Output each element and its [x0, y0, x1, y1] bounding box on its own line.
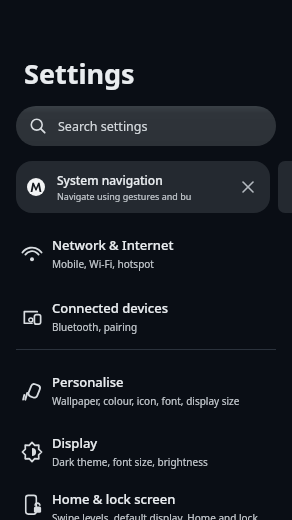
- staticText: Search settings: [58, 118, 148, 135]
- staticText: Connected devices: [52, 299, 169, 317]
- button[interactable]: Personalise: [0, 360, 292, 421]
- staticText: Wallpaper, colour, icon, font, display s…: [52, 394, 240, 408]
- button[interactable]: Display: [0, 421, 292, 482]
- staticText: Bluetooth, pairing: [52, 320, 138, 334]
- staticText: System navigation: [57, 172, 163, 188]
- staticText: Navigate using gestures and bu: [57, 190, 192, 202]
- staticText: Display: [52, 434, 98, 452]
- button[interactable]: Home & lock screen: [0, 490, 292, 520]
- button[interactable]: [278, 161, 292, 213]
- button[interactable]: [231, 170, 265, 204]
- staticText: Swipe levels, default display, Home and …: [52, 511, 258, 520]
- staticText: Dark theme, font size, brightness: [52, 455, 208, 469]
- staticText: Mobile, Wi-Fi, hotspot: [52, 257, 154, 271]
- staticText: Settings: [24, 55, 135, 92]
- staticText: Home & lock screen: [52, 490, 176, 508]
- staticText: Personalise: [52, 373, 124, 391]
- button[interactable]: Network & Internet: [0, 223, 292, 284]
- staticText: Network & Internet: [52, 236, 174, 254]
- button[interactable]: Connected devices: [0, 286, 292, 347]
- button[interactable]: Search settings: [16, 106, 276, 146]
- button[interactable]: System navigation: [16, 161, 270, 213]
